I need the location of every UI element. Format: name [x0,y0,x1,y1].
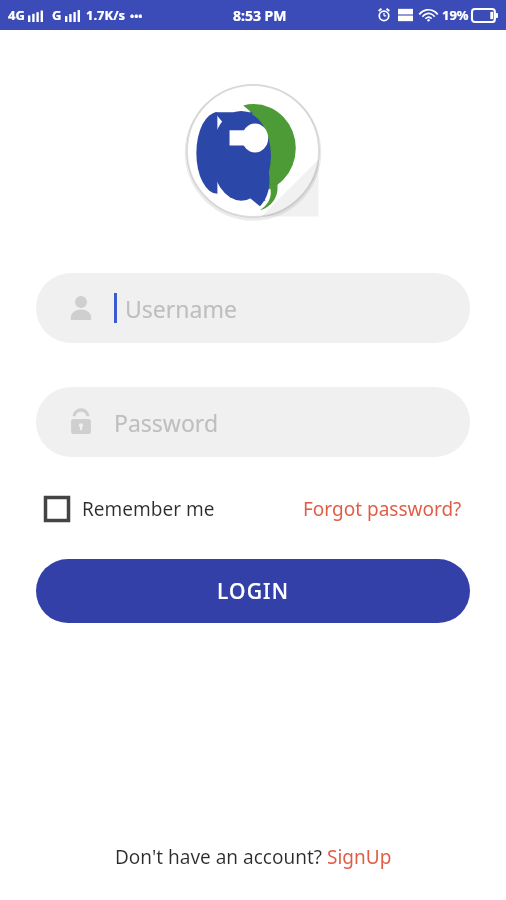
staticText: 4G [8,6,25,24]
staticText: Don't have an account? [115,844,327,870]
button[interactable]: Username [36,273,470,343]
button[interactable]: Forgot password? [303,496,462,522]
staticText: Username [125,293,237,324]
staticText: 1.7K/s [86,6,126,24]
staticText: SignUp [327,844,392,870]
staticText: Remember me [82,496,215,522]
staticText: Password [114,407,219,438]
staticText: G [52,6,62,24]
button[interactable]: Remember me [44,496,215,522]
button[interactable]: LOGIN [36,559,470,623]
button[interactable]: Password [36,387,470,457]
button[interactable]: SignUp [327,844,392,870]
staticText: Forgot password? [303,496,462,522]
staticText: ••• [130,8,143,23]
staticText: 8:53 PM [233,6,287,25]
staticText: 19% [442,6,469,24]
staticText: LOGIN [217,577,290,606]
